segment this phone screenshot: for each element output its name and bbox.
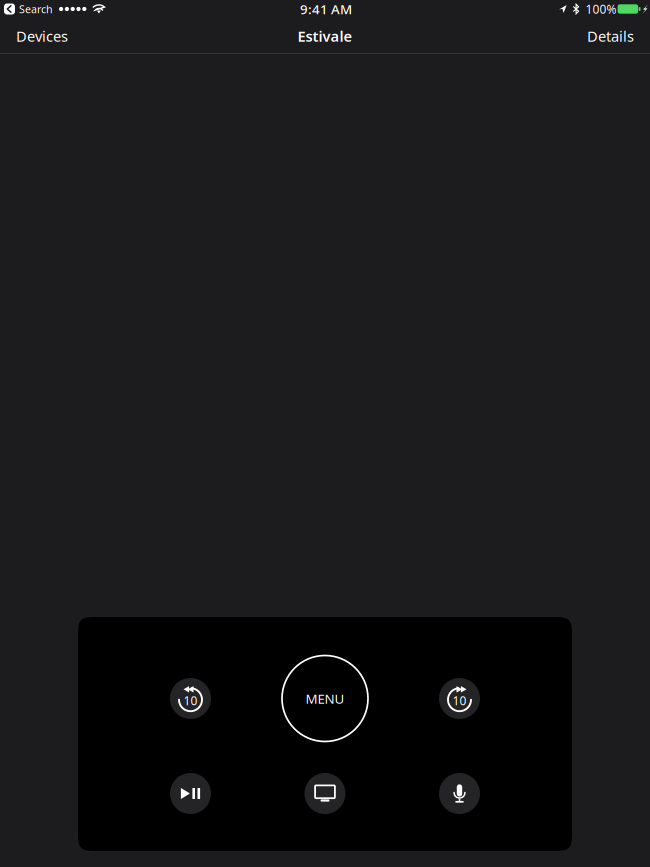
staticText: MENU [305, 690, 344, 707]
button[interactable]: MENU [282, 655, 368, 741]
button[interactable]: TV [304, 773, 345, 814]
staticText: Details [587, 26, 634, 46]
button[interactable]: Skip forward 10 seconds [439, 678, 480, 719]
button[interactable]: Devices [14, 22, 70, 50]
button[interactable]: Details [585, 22, 636, 50]
staticText: Estivale [297, 26, 352, 46]
button[interactable]: Siri [439, 773, 480, 814]
staticText: 10 [452, 692, 466, 708]
staticText: 100% [586, 1, 617, 17]
button[interactable]: Play Pause [170, 773, 211, 814]
button[interactable]: Skip back 10 seconds [170, 678, 211, 719]
staticText: Devices [16, 26, 68, 46]
staticText: Search [19, 2, 53, 16]
staticText: 9:41 AM [300, 0, 352, 18]
staticText: 10 [183, 692, 197, 708]
